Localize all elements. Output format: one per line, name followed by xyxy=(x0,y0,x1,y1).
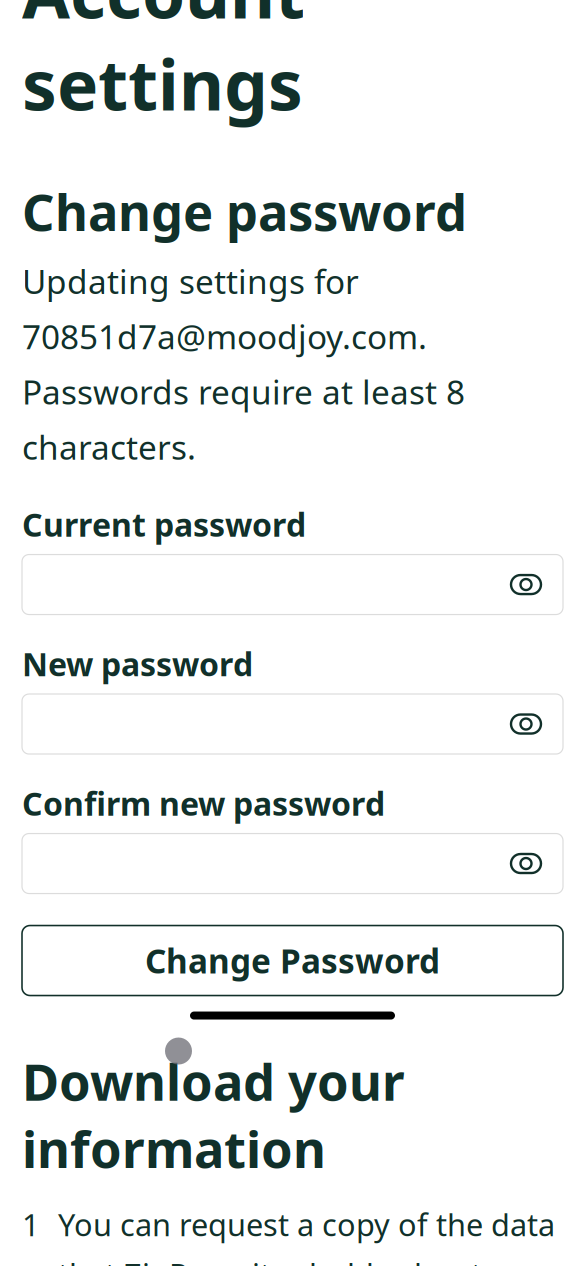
button[interactable]: Confirm new password field, show passwor… xyxy=(22,833,563,893)
staticText: Account settings xyxy=(22,0,305,130)
staticText: New password xyxy=(22,642,253,685)
button[interactable]: Change Password xyxy=(22,925,563,995)
staticText: Download your information xyxy=(22,1047,405,1182)
staticText: You can request a copy of the data that … xyxy=(58,1204,555,1266)
button[interactable]: Current password field, show password xyxy=(22,554,563,614)
staticText: Change password xyxy=(22,178,467,245)
staticText: Confirm new password xyxy=(22,782,385,824)
staticText: 1. xyxy=(22,1204,40,1266)
button[interactable]: New password field, show password xyxy=(22,694,563,754)
staticText: Change Password xyxy=(145,938,440,983)
staticText: Updating settings for 70851d7a@moodjoy.c… xyxy=(22,259,465,469)
staticText: Current password xyxy=(22,503,306,545)
